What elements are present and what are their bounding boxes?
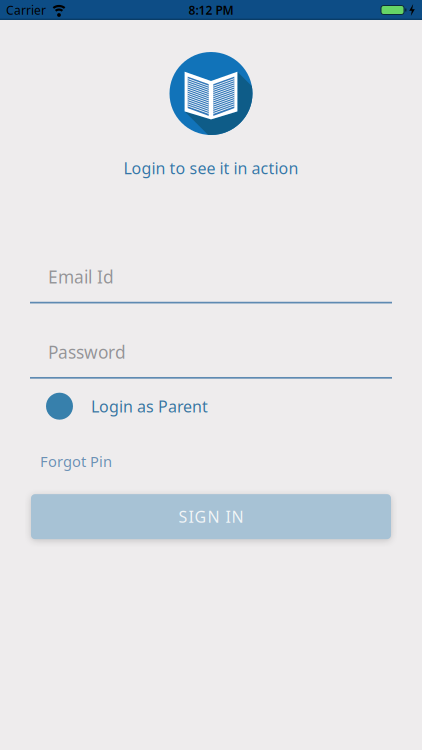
staticText: SIGN IN — [178, 506, 243, 527]
staticText: Login as Parent — [91, 396, 208, 417]
staticText: Password — [48, 340, 126, 363]
button[interactable]: Forgot Pin — [0, 452, 422, 471]
staticText: Login to see it in action — [123, 157, 298, 179]
button[interactable]: Password — [30, 340, 392, 379]
button[interactable]: Login as Parent — [0, 393, 422, 420]
staticText: Carrier — [6, 2, 46, 18]
button[interactable]: Email Id — [30, 265, 392, 303]
button[interactable]: SIGN IN — [31, 494, 391, 539]
staticText: Email Id — [48, 265, 114, 288]
staticText: 8:12 PM — [188, 2, 233, 18]
staticText: Forgot Pin — [40, 452, 112, 471]
